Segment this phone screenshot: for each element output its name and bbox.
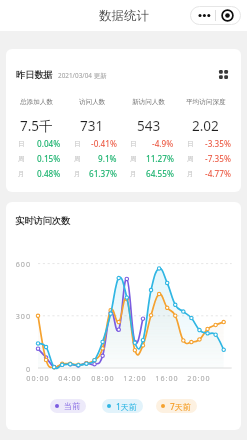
staticText: 月 bbox=[130, 170, 137, 178]
staticText: -7.35% bbox=[205, 153, 231, 164]
staticText: 0.15% bbox=[37, 153, 61, 164]
staticText: 0.04% bbox=[37, 138, 61, 149]
staticText: 731 bbox=[80, 117, 104, 135]
staticText: 543 bbox=[137, 117, 161, 135]
staticText: 61.37% bbox=[89, 168, 117, 179]
staticText: -4.77% bbox=[205, 168, 231, 179]
button[interactable]: More data bbox=[217, 68, 230, 81]
staticText: 周 bbox=[74, 155, 81, 163]
staticText: 2.02 bbox=[192, 117, 219, 135]
staticText: 当前 bbox=[64, 401, 81, 411]
staticText: -0.41% bbox=[91, 138, 117, 149]
staticText: 2021/03/04 更新 bbox=[58, 71, 107, 80]
staticText: 04:00 bbox=[50, 373, 90, 383]
staticText: 总添加人数 bbox=[20, 98, 53, 106]
button[interactable]: 7天前 bbox=[156, 399, 197, 413]
staticText: 9.1% bbox=[98, 153, 117, 164]
staticText: 日 bbox=[18, 140, 25, 148]
button[interactable]: 当前 bbox=[50, 399, 86, 413]
staticText: 300 bbox=[6, 311, 31, 321]
staticText: 64.55% bbox=[146, 168, 174, 179]
staticText: 12:00 bbox=[115, 373, 155, 383]
button[interactable]: 1天前 bbox=[102, 399, 143, 413]
staticText: 月 bbox=[18, 170, 25, 178]
staticText: 0 bbox=[6, 364, 31, 374]
staticText: 周 bbox=[18, 155, 25, 163]
staticText: -3.35% bbox=[205, 138, 231, 149]
staticText: 600 bbox=[6, 259, 31, 269]
staticText: 日 bbox=[74, 140, 81, 148]
staticText: 0.48% bbox=[37, 168, 61, 179]
staticText: 数据统计 bbox=[99, 8, 149, 24]
staticText: 日 bbox=[130, 140, 137, 148]
staticText: 20:00 bbox=[179, 373, 219, 383]
button[interactable]: More options bbox=[190, 6, 241, 25]
staticText: -4.9% bbox=[152, 138, 174, 149]
staticText: 08:00 bbox=[83, 373, 123, 383]
staticText: 新访问人数 bbox=[132, 98, 165, 106]
staticText: 访问人数 bbox=[79, 98, 106, 106]
staticText: 1天前 bbox=[116, 401, 138, 412]
staticText: 月 bbox=[74, 170, 81, 178]
staticText: 平均访问深度 bbox=[186, 98, 226, 106]
staticText: 周 bbox=[130, 155, 137, 163]
staticText: 16:00 bbox=[147, 373, 187, 383]
staticText: 7.5千 bbox=[20, 117, 53, 135]
staticText: 7天前 bbox=[170, 401, 192, 412]
staticText: 00:00 bbox=[18, 373, 58, 383]
staticText: 周 bbox=[187, 155, 194, 163]
staticText: 昨日数据 bbox=[16, 69, 53, 81]
staticText: 月 bbox=[187, 170, 194, 178]
staticText: 11.27% bbox=[146, 153, 174, 164]
staticText: 日 bbox=[187, 140, 194, 148]
staticText: 实时访问次数 bbox=[15, 215, 71, 227]
